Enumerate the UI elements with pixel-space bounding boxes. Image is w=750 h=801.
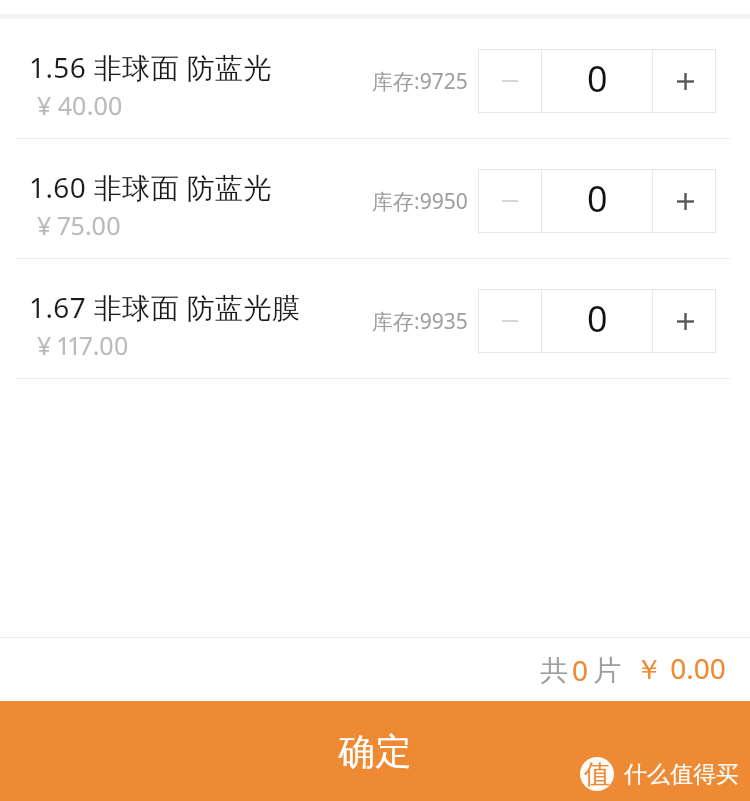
button[interactable]: 确定 bbox=[0, 701, 750, 801]
staticText: 共 bbox=[540, 653, 568, 688]
staticText: 0 bbox=[572, 651, 589, 689]
staticText: 确定 bbox=[338, 729, 412, 774]
button[interactable]: 1.56 非球面 防蓝光 bbox=[0, 19, 750, 138]
staticText: 1.56 非球面 防蓝光 bbox=[29, 48, 272, 86]
staticText: ¥ 117.00 bbox=[37, 328, 129, 362]
staticText: 片 bbox=[593, 653, 621, 688]
button[interactable]: Decrease quantity bbox=[478, 49, 541, 113]
staticText: ￥ 0.00 bbox=[635, 649, 726, 687]
staticText: 什么值得买 bbox=[624, 760, 739, 789]
staticText: 库存:9725 bbox=[372, 67, 468, 96]
button[interactable]: Increase quantity bbox=[653, 169, 715, 233]
button[interactable]: 1.67 非球面 防蓝光膜 bbox=[0, 259, 750, 378]
staticText: 0 bbox=[587, 294, 608, 343]
staticText: ¥ 40.00 bbox=[37, 88, 123, 122]
button[interactable]: Increase quantity bbox=[653, 289, 715, 353]
button[interactable]: Decrease quantity bbox=[478, 289, 541, 353]
button[interactable]: 0 bbox=[542, 289, 652, 353]
button[interactable]: Decrease quantity bbox=[478, 169, 541, 233]
staticText: ¥ 75.00 bbox=[37, 208, 121, 242]
button[interactable]: Increase quantity bbox=[653, 49, 715, 113]
button[interactable]: 0 bbox=[542, 169, 652, 233]
button[interactable]: 0 bbox=[542, 49, 652, 113]
staticText: 1.60 非球面 防蓝光 bbox=[29, 168, 272, 206]
staticText: 0 bbox=[587, 174, 608, 223]
button[interactable]: 1.60 非球面 防蓝光 bbox=[0, 139, 750, 258]
staticText: 库存:9935 bbox=[372, 307, 468, 336]
staticText: 1.67 非球面 防蓝光膜 bbox=[29, 288, 301, 326]
staticText: 库存:9950 bbox=[372, 187, 468, 216]
staticText: 值 bbox=[584, 758, 610, 791]
staticText: 0 bbox=[587, 54, 608, 103]
